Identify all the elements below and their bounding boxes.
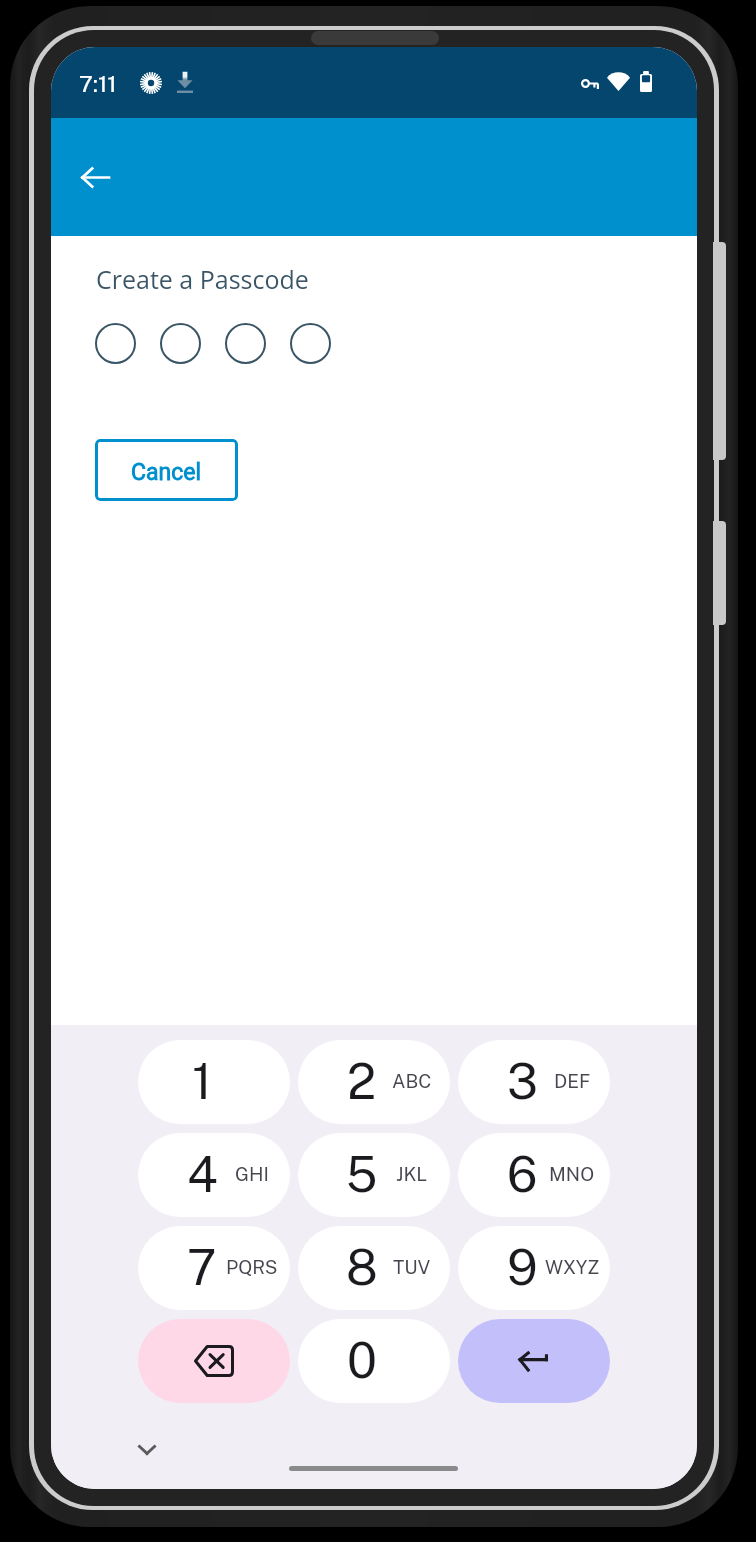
button[interactable]: Enter bbox=[458, 1319, 610, 1403]
button[interactable]: 2 bbox=[298, 1040, 450, 1124]
button[interactable]: Hide keyboard bbox=[131, 1438, 163, 1462]
button[interactable]: 8 bbox=[298, 1226, 450, 1310]
staticText: 6 bbox=[507, 1145, 538, 1203]
staticText: TUV bbox=[393, 1256, 431, 1278]
staticText: GHI bbox=[235, 1163, 269, 1185]
staticText: MNO bbox=[549, 1163, 595, 1185]
button[interactable]: Backspace bbox=[138, 1319, 290, 1403]
staticText: 5 bbox=[346, 1145, 378, 1203]
button[interactable]: 0 bbox=[298, 1319, 450, 1403]
staticText: 2 bbox=[347, 1052, 377, 1110]
staticText: PQRS bbox=[226, 1256, 278, 1278]
staticText: Create a Passcode bbox=[96, 262, 309, 296]
staticText: Cancel bbox=[131, 459, 202, 486]
button[interactable]: 7 bbox=[138, 1226, 290, 1310]
staticText: 3 bbox=[507, 1052, 538, 1110]
button[interactable]: Cancel bbox=[95, 439, 238, 501]
staticText: 9 bbox=[507, 1238, 538, 1296]
button[interactable]: 3 bbox=[458, 1040, 610, 1124]
button[interactable]: 6 bbox=[458, 1133, 610, 1217]
staticText: 8 bbox=[346, 1238, 378, 1296]
staticText: 1 bbox=[192, 1052, 212, 1110]
button[interactable]: 1 bbox=[138, 1040, 290, 1124]
staticText: 4 bbox=[187, 1145, 218, 1203]
staticText: 0 bbox=[347, 1331, 377, 1389]
button[interactable]: 5 bbox=[298, 1133, 450, 1217]
staticText: JKL bbox=[396, 1163, 428, 1185]
staticText: 7:11 bbox=[79, 70, 117, 97]
button[interactable]: Back bbox=[71, 153, 119, 201]
button[interactable]: 9 bbox=[458, 1226, 610, 1310]
staticText: DEF bbox=[554, 1070, 591, 1092]
staticText: ABC bbox=[392, 1070, 432, 1092]
staticText: 7 bbox=[187, 1238, 217, 1296]
button[interactable]: 4 bbox=[138, 1133, 290, 1217]
staticText: WXYZ bbox=[545, 1256, 600, 1278]
